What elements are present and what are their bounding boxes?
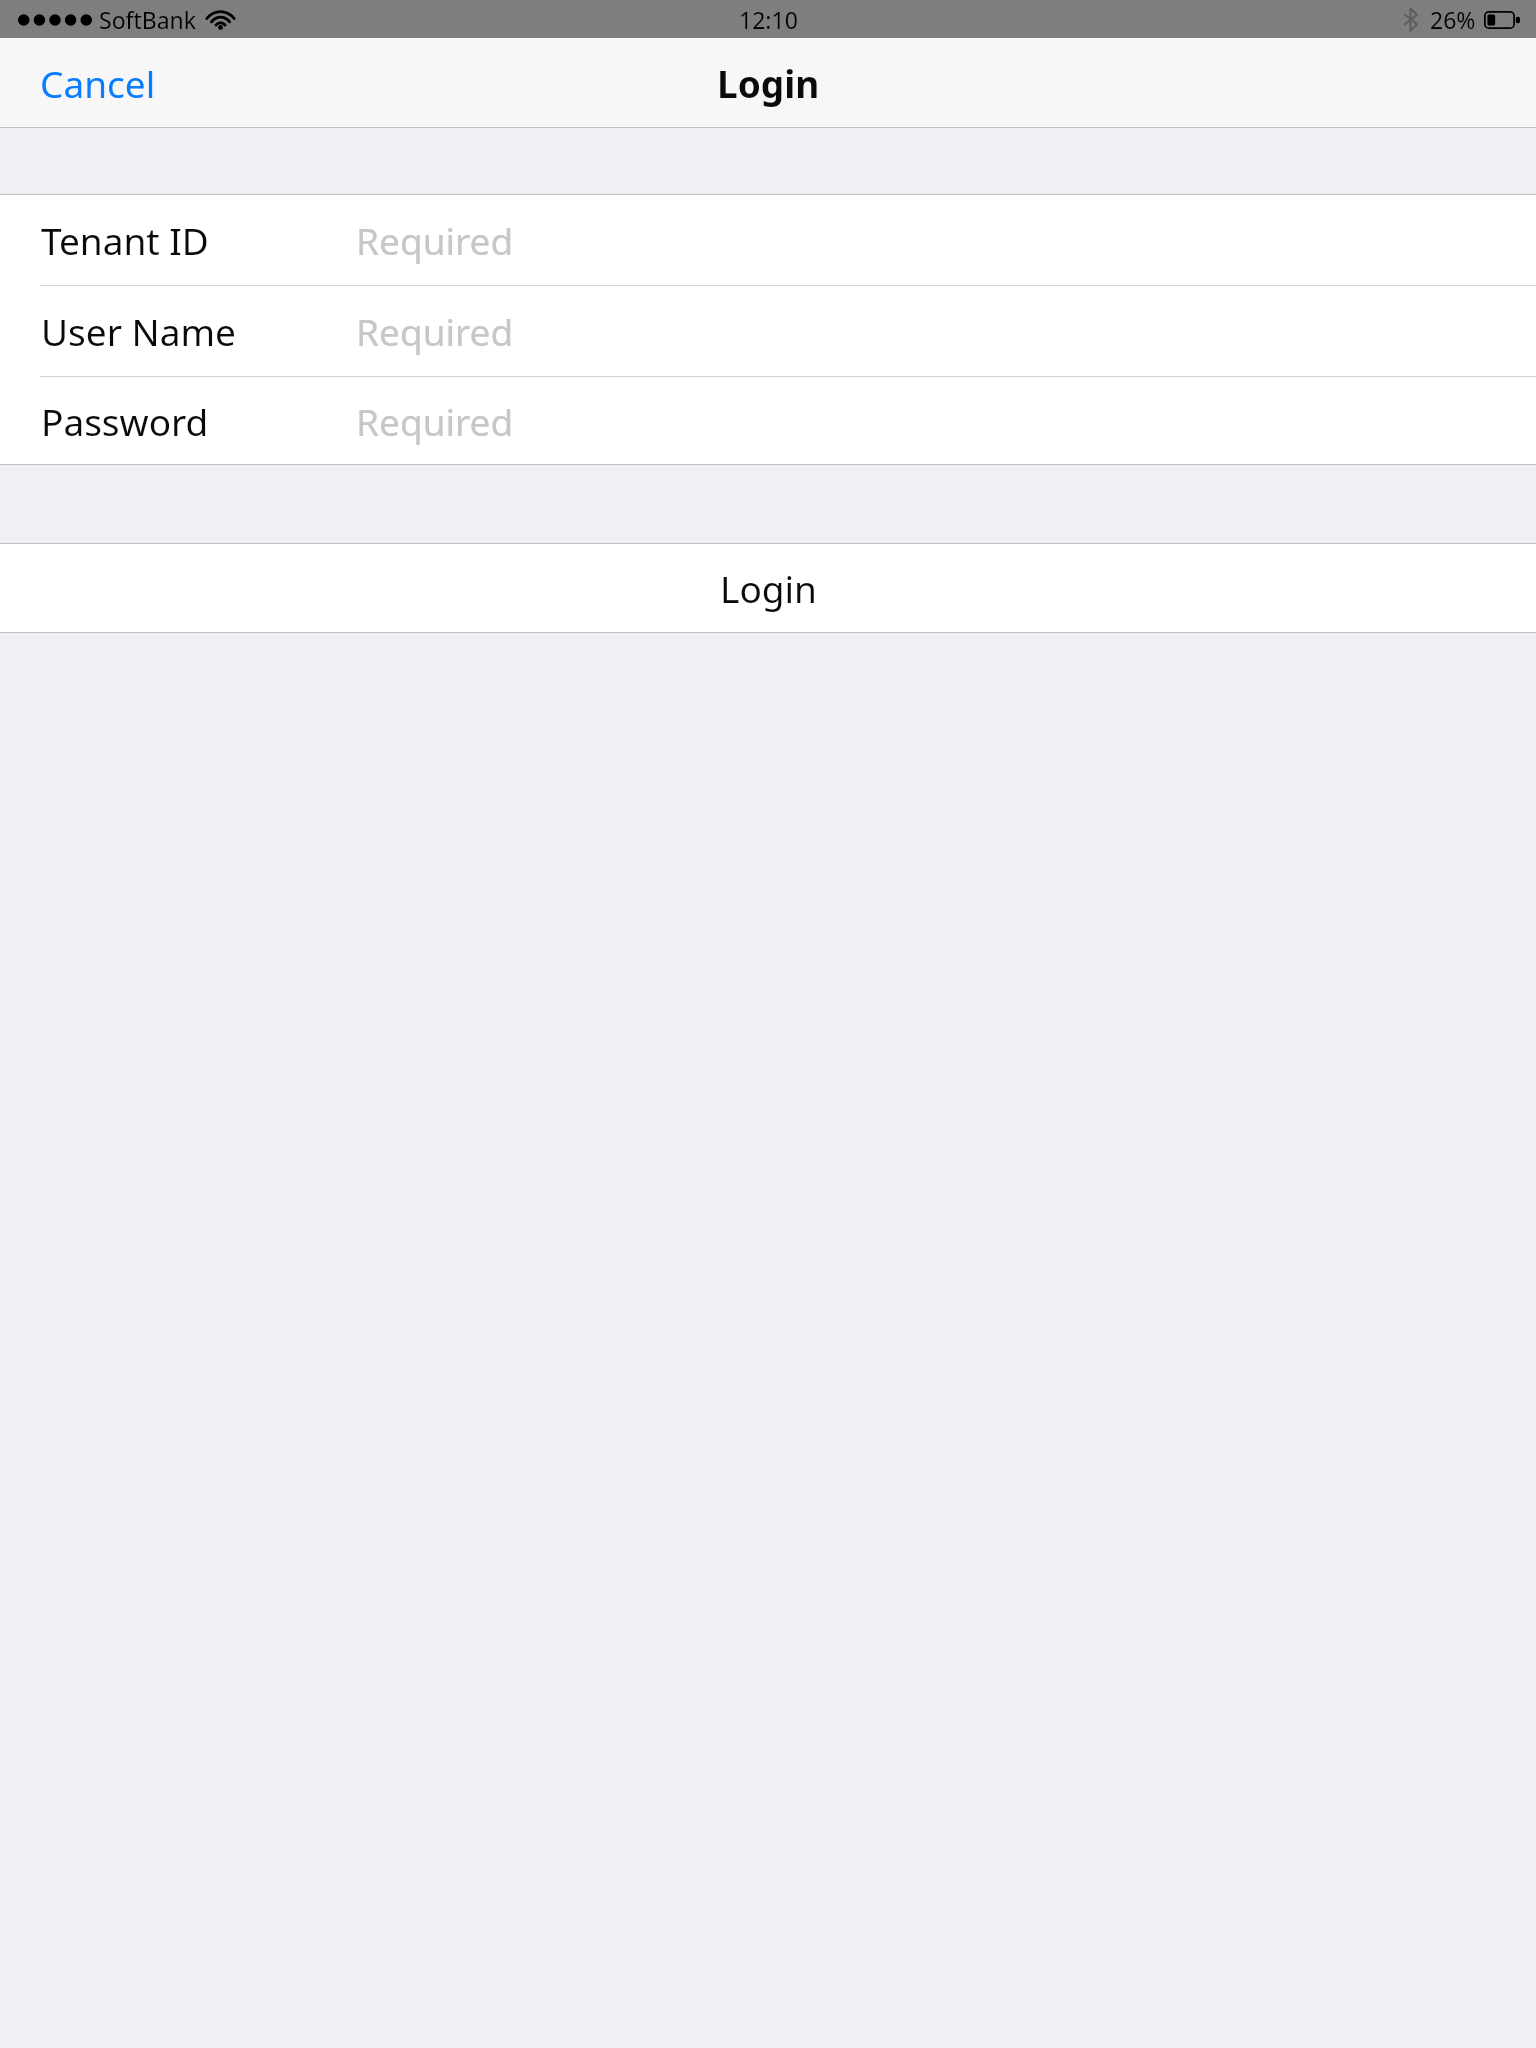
button[interactable]: User Name	[0, 286, 1536, 377]
staticText: User Name	[41, 306, 236, 356]
button[interactable]: Cancel	[0, 38, 196, 127]
staticText: 26%	[1430, 4, 1476, 35]
staticText: 12:10	[739, 4, 798, 35]
staticText: Cancel	[40, 58, 156, 108]
button[interactable]: Login	[0, 544, 1536, 632]
staticText: Required	[356, 396, 514, 446]
button[interactable]: Tenant ID	[0, 195, 1536, 286]
staticText: Tenant ID	[41, 215, 209, 265]
staticText: Required	[356, 306, 514, 356]
staticText: Login	[717, 58, 820, 108]
staticText: SoftBank	[99, 4, 197, 35]
staticText: Required	[356, 215, 514, 265]
staticText: Login	[720, 563, 817, 613]
staticText: Password	[41, 396, 209, 446]
button[interactable]: Password	[0, 377, 1536, 464]
